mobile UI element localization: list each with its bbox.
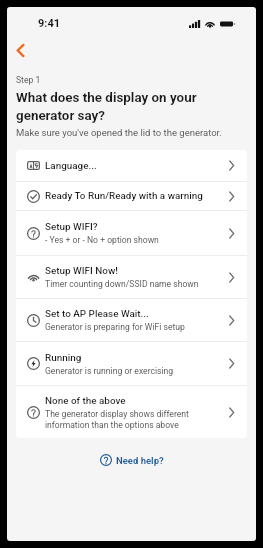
button[interactable]: Language... bbox=[16, 150, 247, 181]
button[interactable]: Setup WIFI Now! bbox=[16, 256, 247, 298]
staticText: Need help? bbox=[116, 455, 164, 466]
staticText: Setup WIFI? bbox=[45, 221, 98, 233]
staticText: Setup WIFI Now! bbox=[45, 265, 118, 277]
button[interactable]: Setup WIFI? bbox=[16, 211, 247, 255]
staticText: 9:41 bbox=[38, 17, 61, 30]
button[interactable]: Running bbox=[16, 342, 247, 385]
button[interactable]: Need help? bbox=[94, 450, 170, 470]
staticText: Timer counting down/SSID name shown bbox=[45, 279, 199, 289]
button[interactable]: Set to AP Please Wait... bbox=[16, 299, 247, 341]
staticText: Running bbox=[45, 352, 82, 364]
staticText: What does the display on your generator … bbox=[16, 90, 247, 124]
staticText: None of the above bbox=[45, 395, 126, 407]
staticText: Language... bbox=[45, 160, 97, 172]
staticText: - Yes + or - No + option shown bbox=[45, 235, 159, 245]
button[interactable]: None of the above bbox=[16, 386, 247, 438]
staticText: Generator is preparing for WiFi setup bbox=[45, 322, 185, 332]
staticText: Set to AP Please Wait... bbox=[45, 308, 149, 320]
staticText: Make sure you've opened the lid to the g… bbox=[16, 127, 222, 138]
staticText: The generator display shows different in… bbox=[45, 409, 211, 430]
staticText: Generator is running or exercising bbox=[45, 366, 174, 376]
staticText: Ready To Run/Ready with a warning bbox=[45, 190, 203, 202]
button[interactable]: Ready To Run/Ready with a warning bbox=[16, 182, 247, 210]
staticText: Step 1 bbox=[16, 75, 41, 85]
button[interactable]: Back bbox=[7, 36, 33, 64]
